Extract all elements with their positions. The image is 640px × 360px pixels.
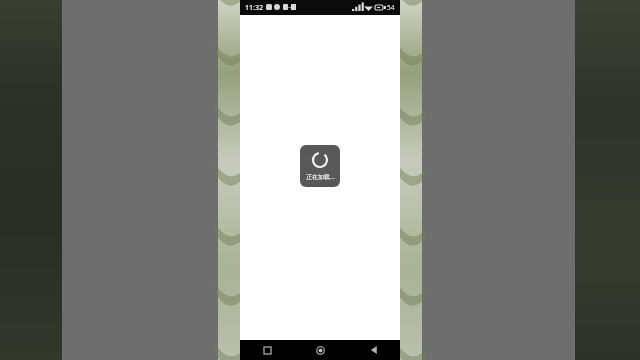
button[interactable]: Home	[294, 340, 347, 360]
button[interactable]: Back	[347, 340, 400, 360]
staticText: 54	[387, 3, 395, 12]
staticText: 11:32	[245, 3, 263, 13]
staticText: ···	[286, 3, 292, 13]
button[interactable]: 正在加载...	[300, 145, 340, 187]
button[interactable]: Recents	[240, 340, 294, 360]
staticText: 正在加载...	[306, 173, 335, 181]
